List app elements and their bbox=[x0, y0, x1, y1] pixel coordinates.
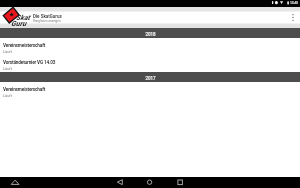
staticText: Vorständeturnier VG 14.03 bbox=[3, 60, 56, 66]
staticText: Läuft bbox=[3, 93, 12, 98]
staticText: Guru bbox=[11, 19, 27, 27]
staticText: Läuft bbox=[3, 66, 12, 71]
staticText: Läuft bbox=[3, 49, 12, 54]
button[interactable]: Vereinsmeisterschaft bbox=[0, 38, 300, 55]
staticText: Ranglisten anzeigen bbox=[33, 19, 61, 23]
button[interactable]: Home bbox=[143, 177, 157, 188]
staticText: 14:48 bbox=[290, 1, 299, 5]
button[interactable]: More options bbox=[286, 7, 300, 28]
staticText: 2017 bbox=[145, 76, 156, 81]
button[interactable]: Back bbox=[113, 177, 127, 188]
button[interactable]: Vereinsmeisterschaft bbox=[0, 82, 300, 99]
staticText: Skat bbox=[16, 14, 30, 22]
staticText: Vereinsmeisterschaft bbox=[3, 43, 46, 49]
staticText: 2018 bbox=[145, 32, 156, 37]
button[interactable]: Recent apps bbox=[173, 177, 187, 188]
button[interactable]: Vorständeturnier VG 14.03 bbox=[0, 55, 300, 72]
staticText: Die SkatGurus bbox=[33, 14, 62, 19]
button[interactable]: Up bbox=[8, 177, 22, 188]
staticText: Vereinsmeisterschaft bbox=[3, 87, 46, 93]
